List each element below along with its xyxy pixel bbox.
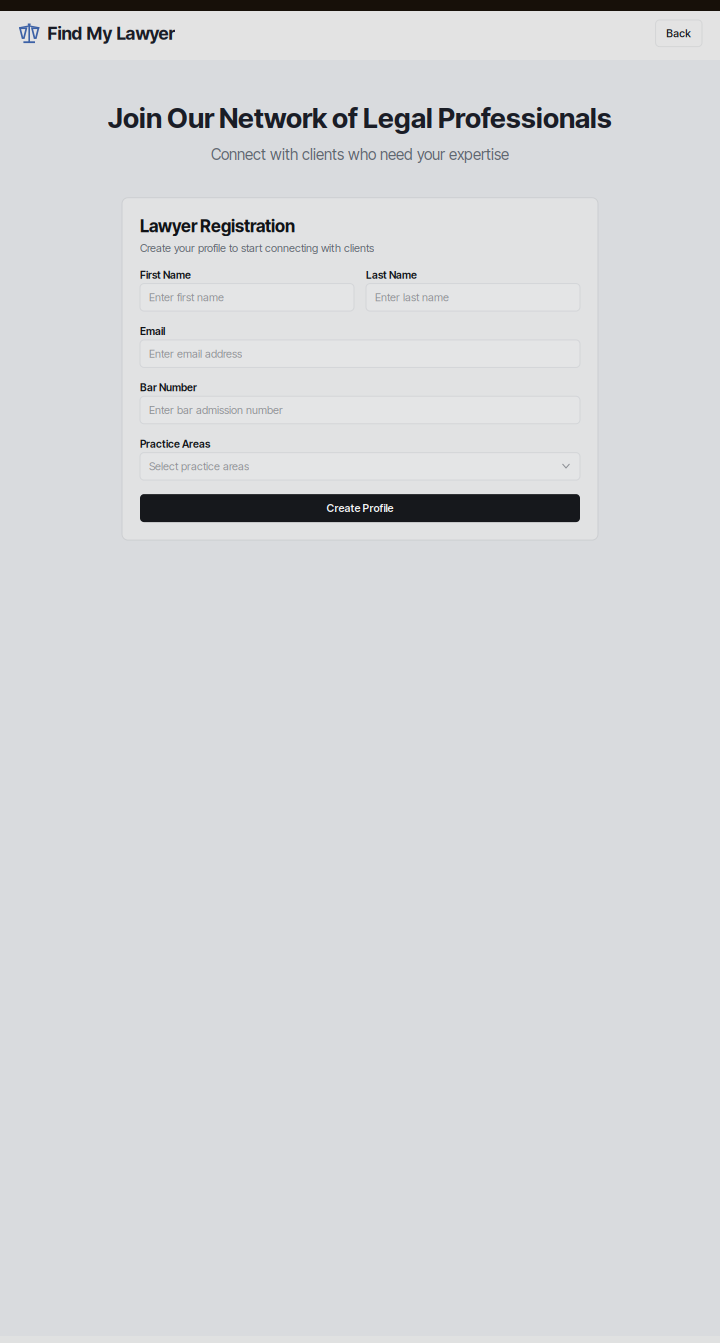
- staticText: Connect with clients who need your exper…: [211, 145, 509, 164]
- staticText: Practice Areas: [140, 437, 210, 450]
- staticText: Enter bar admission number: [149, 403, 283, 417]
- button[interactable]: Practice Areas: [140, 437, 580, 480]
- staticText: Create your profile to start connecting …: [140, 241, 374, 255]
- staticText: Create Profile: [326, 502, 393, 515]
- button[interactable]: Create Profile: [140, 494, 580, 522]
- staticText: Enter first name: [149, 291, 224, 304]
- button[interactable]: Back: [656, 20, 702, 47]
- staticText: Last Name: [366, 268, 417, 281]
- staticText: Join Our Network of Legal Professionals: [108, 101, 612, 135]
- staticText: Enter last name: [375, 291, 449, 304]
- staticText: Find My Lawyer: [47, 23, 175, 44]
- staticText: First Name: [140, 268, 191, 281]
- staticText: Enter email address: [149, 347, 242, 360]
- staticText: Select practice areas: [149, 460, 249, 473]
- staticText: Email: [140, 325, 165, 337]
- staticText: Bar Number: [140, 381, 197, 394]
- staticText: Back: [666, 27, 691, 40]
- staticText: Lawyer Registration: [140, 216, 295, 236]
